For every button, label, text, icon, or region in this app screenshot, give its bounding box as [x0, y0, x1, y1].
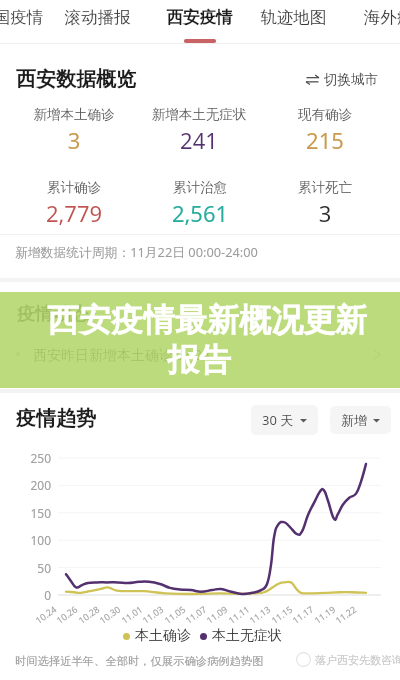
- staticText: 11.07: [183, 602, 209, 626]
- staticText: 新增: [341, 412, 367, 428]
- staticText: 新增数据统计周期：11月22日 00:00-24:00: [15, 243, 258, 260]
- staticText: 2,779: [4, 198, 144, 228]
- staticText: 11.01: [119, 602, 145, 626]
- staticText: 疫情趋势: [16, 406, 96, 431]
- staticText: 0: [0, 587, 51, 603]
- button[interactable]: 西安疫情: [159, 0, 240, 43]
- staticText: 西安数据概览: [16, 67, 136, 92]
- button[interactable]: 轨迹地图: [253, 0, 334, 43]
- staticText: 海外疫: [356, 7, 400, 28]
- button[interactable]: 西安昨日新增本土确诊“3+241”: [0, 339, 400, 369]
- staticText: 新增本土确诊: [4, 106, 144, 123]
- staticText: 切换城市: [324, 71, 378, 88]
- staticText: 241: [129, 125, 269, 155]
- staticText: 累计确诊: [4, 179, 144, 196]
- staticText: 11.19: [312, 602, 338, 626]
- button[interactable]: 海外疫: [356, 0, 400, 43]
- button[interactable]: 本土确诊: [123, 627, 191, 645]
- staticText: 新增本土无症状: [129, 106, 269, 123]
- staticText: 10.28: [76, 602, 102, 626]
- staticText: 累计死亡: [255, 179, 395, 196]
- staticText: 西安昨日新增本土确诊“3+241”: [33, 345, 224, 364]
- staticText: 11.11: [226, 602, 252, 626]
- staticText: 时间选择近半年、全部时，仅展示确诊病例趋势图: [15, 654, 264, 668]
- staticText: 11.05: [162, 602, 188, 626]
- staticText: 累计治愈: [130, 179, 270, 196]
- button[interactable]: 切换城市: [303, 69, 381, 90]
- staticText: 3: [4, 125, 144, 155]
- staticText: 2,561: [130, 198, 270, 228]
- staticText: 西安疫情: [159, 7, 240, 28]
- button[interactable]: 30 天: [251, 405, 318, 435]
- staticText: 报告: [167, 340, 231, 380]
- staticText: 轨迹地图: [253, 7, 334, 28]
- button[interactable]: 新增: [330, 406, 391, 434]
- staticText: 本土无症状: [212, 627, 282, 645]
- staticText: 滚动播报: [57, 7, 138, 28]
- staticText: 国疫情: [0, 7, 51, 28]
- button[interactable]: 本土无症状: [200, 627, 282, 645]
- staticText: 11.03: [140, 602, 166, 626]
- staticText: 250: [0, 450, 51, 466]
- staticText: 3: [255, 198, 395, 228]
- staticText: 11.17: [290, 602, 316, 626]
- staticText: 10.30: [97, 602, 123, 626]
- staticText: 11.09: [204, 602, 230, 626]
- staticText: 100: [0, 532, 51, 548]
- staticText: 10.26: [54, 602, 80, 626]
- staticText: 30 天: [262, 411, 294, 429]
- staticText: 10.24: [33, 602, 59, 626]
- staticText: 现有确诊: [255, 106, 395, 123]
- staticText: 150: [0, 505, 51, 521]
- staticText: 200: [0, 477, 51, 493]
- staticText: 本土确诊: [135, 627, 191, 645]
- staticText: 50: [0, 560, 51, 576]
- staticText: 疫情动态: [17, 303, 89, 326]
- button[interactable]: 滚动播报: [57, 0, 138, 43]
- staticText: 11.13: [247, 602, 273, 626]
- staticText: 11.15: [269, 602, 295, 626]
- staticText: 西安疫情最新概况更新: [47, 300, 367, 340]
- staticText: 215: [255, 125, 395, 155]
- staticText: 11.22: [333, 602, 359, 626]
- staticText: 落户西安先数咨询: [315, 653, 400, 667]
- button[interactable]: 国疫情: [0, 0, 51, 43]
